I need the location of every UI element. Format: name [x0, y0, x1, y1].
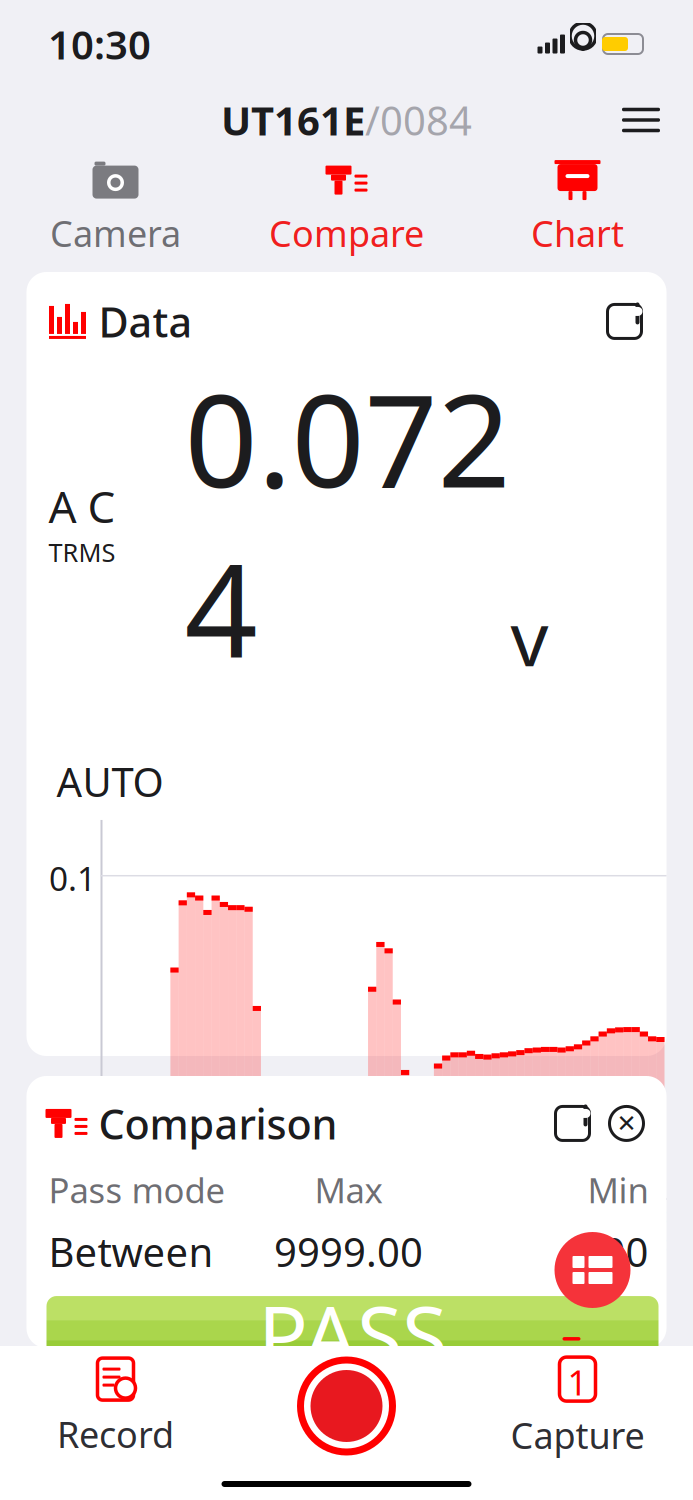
staticText: Min	[587, 1167, 648, 1213]
button[interactable]: Record	[231, 1346, 462, 1466]
staticText: 10:30:02	[557, 1200, 587, 1285]
staticText: 0	[63, 1150, 82, 1194]
staticText: Between	[48, 1225, 213, 1278]
staticText: 10:29:57	[397, 1200, 427, 1285]
staticText: v	[510, 588, 548, 687]
staticText: A C	[48, 477, 115, 535]
staticText: Compare	[269, 209, 424, 257]
staticText: Comparison	[98, 1096, 337, 1151]
staticText: Chart	[531, 209, 624, 257]
staticText: 1	[567, 1359, 587, 1405]
staticText: 10:29:50	[197, 1200, 227, 1285]
button[interactable]: Edit data	[604, 301, 644, 341]
staticText: 0.1	[49, 856, 96, 900]
staticText: 10:29:49	[157, 1200, 187, 1285]
staticText: ✕	[616, 1110, 636, 1137]
staticText: Pass mode	[48, 1167, 225, 1213]
staticText: 0.00	[568, 1225, 648, 1278]
staticText: Capture	[510, 1411, 644, 1459]
staticText: 10:29:54	[317, 1200, 347, 1285]
staticText: AUTO	[56, 755, 163, 808]
button[interactable]: 1	[462, 1346, 693, 1466]
staticText: 10:30:05	[637, 1200, 667, 1285]
staticText: 10:30	[48, 17, 151, 70]
staticText: 9999.00	[274, 1225, 423, 1278]
button[interactable]: Chart	[462, 155, 693, 259]
staticText: PASS	[258, 1279, 447, 1389]
staticText: Data	[98, 294, 192, 349]
button[interactable]: Close comparison	[606, 1103, 646, 1143]
staticText: TRMS	[48, 535, 115, 569]
staticText: 10:30:03	[597, 1200, 627, 1285]
staticText: Camera	[50, 209, 181, 257]
staticText: 10:29:55	[357, 1200, 387, 1285]
button[interactable]: Menu	[611, 92, 671, 148]
button[interactable]: Record	[0, 1346, 231, 1466]
staticText: UT161E	[221, 93, 365, 146]
staticText: /0084	[365, 93, 472, 146]
staticText: Max	[314, 1167, 382, 1213]
staticText: 10:29:48	[117, 1200, 147, 1285]
button[interactable]: Camera	[0, 155, 231, 259]
button[interactable]: Compare	[231, 155, 462, 259]
staticText: 10:29:53	[277, 1200, 307, 1285]
button[interactable]: Layout options	[554, 1232, 630, 1308]
staticText: Record	[57, 1410, 174, 1458]
staticText: 0.0724	[184, 353, 510, 693]
staticText: 10:29:47	[77, 1200, 107, 1285]
button[interactable]: Edit comparison	[552, 1103, 592, 1143]
